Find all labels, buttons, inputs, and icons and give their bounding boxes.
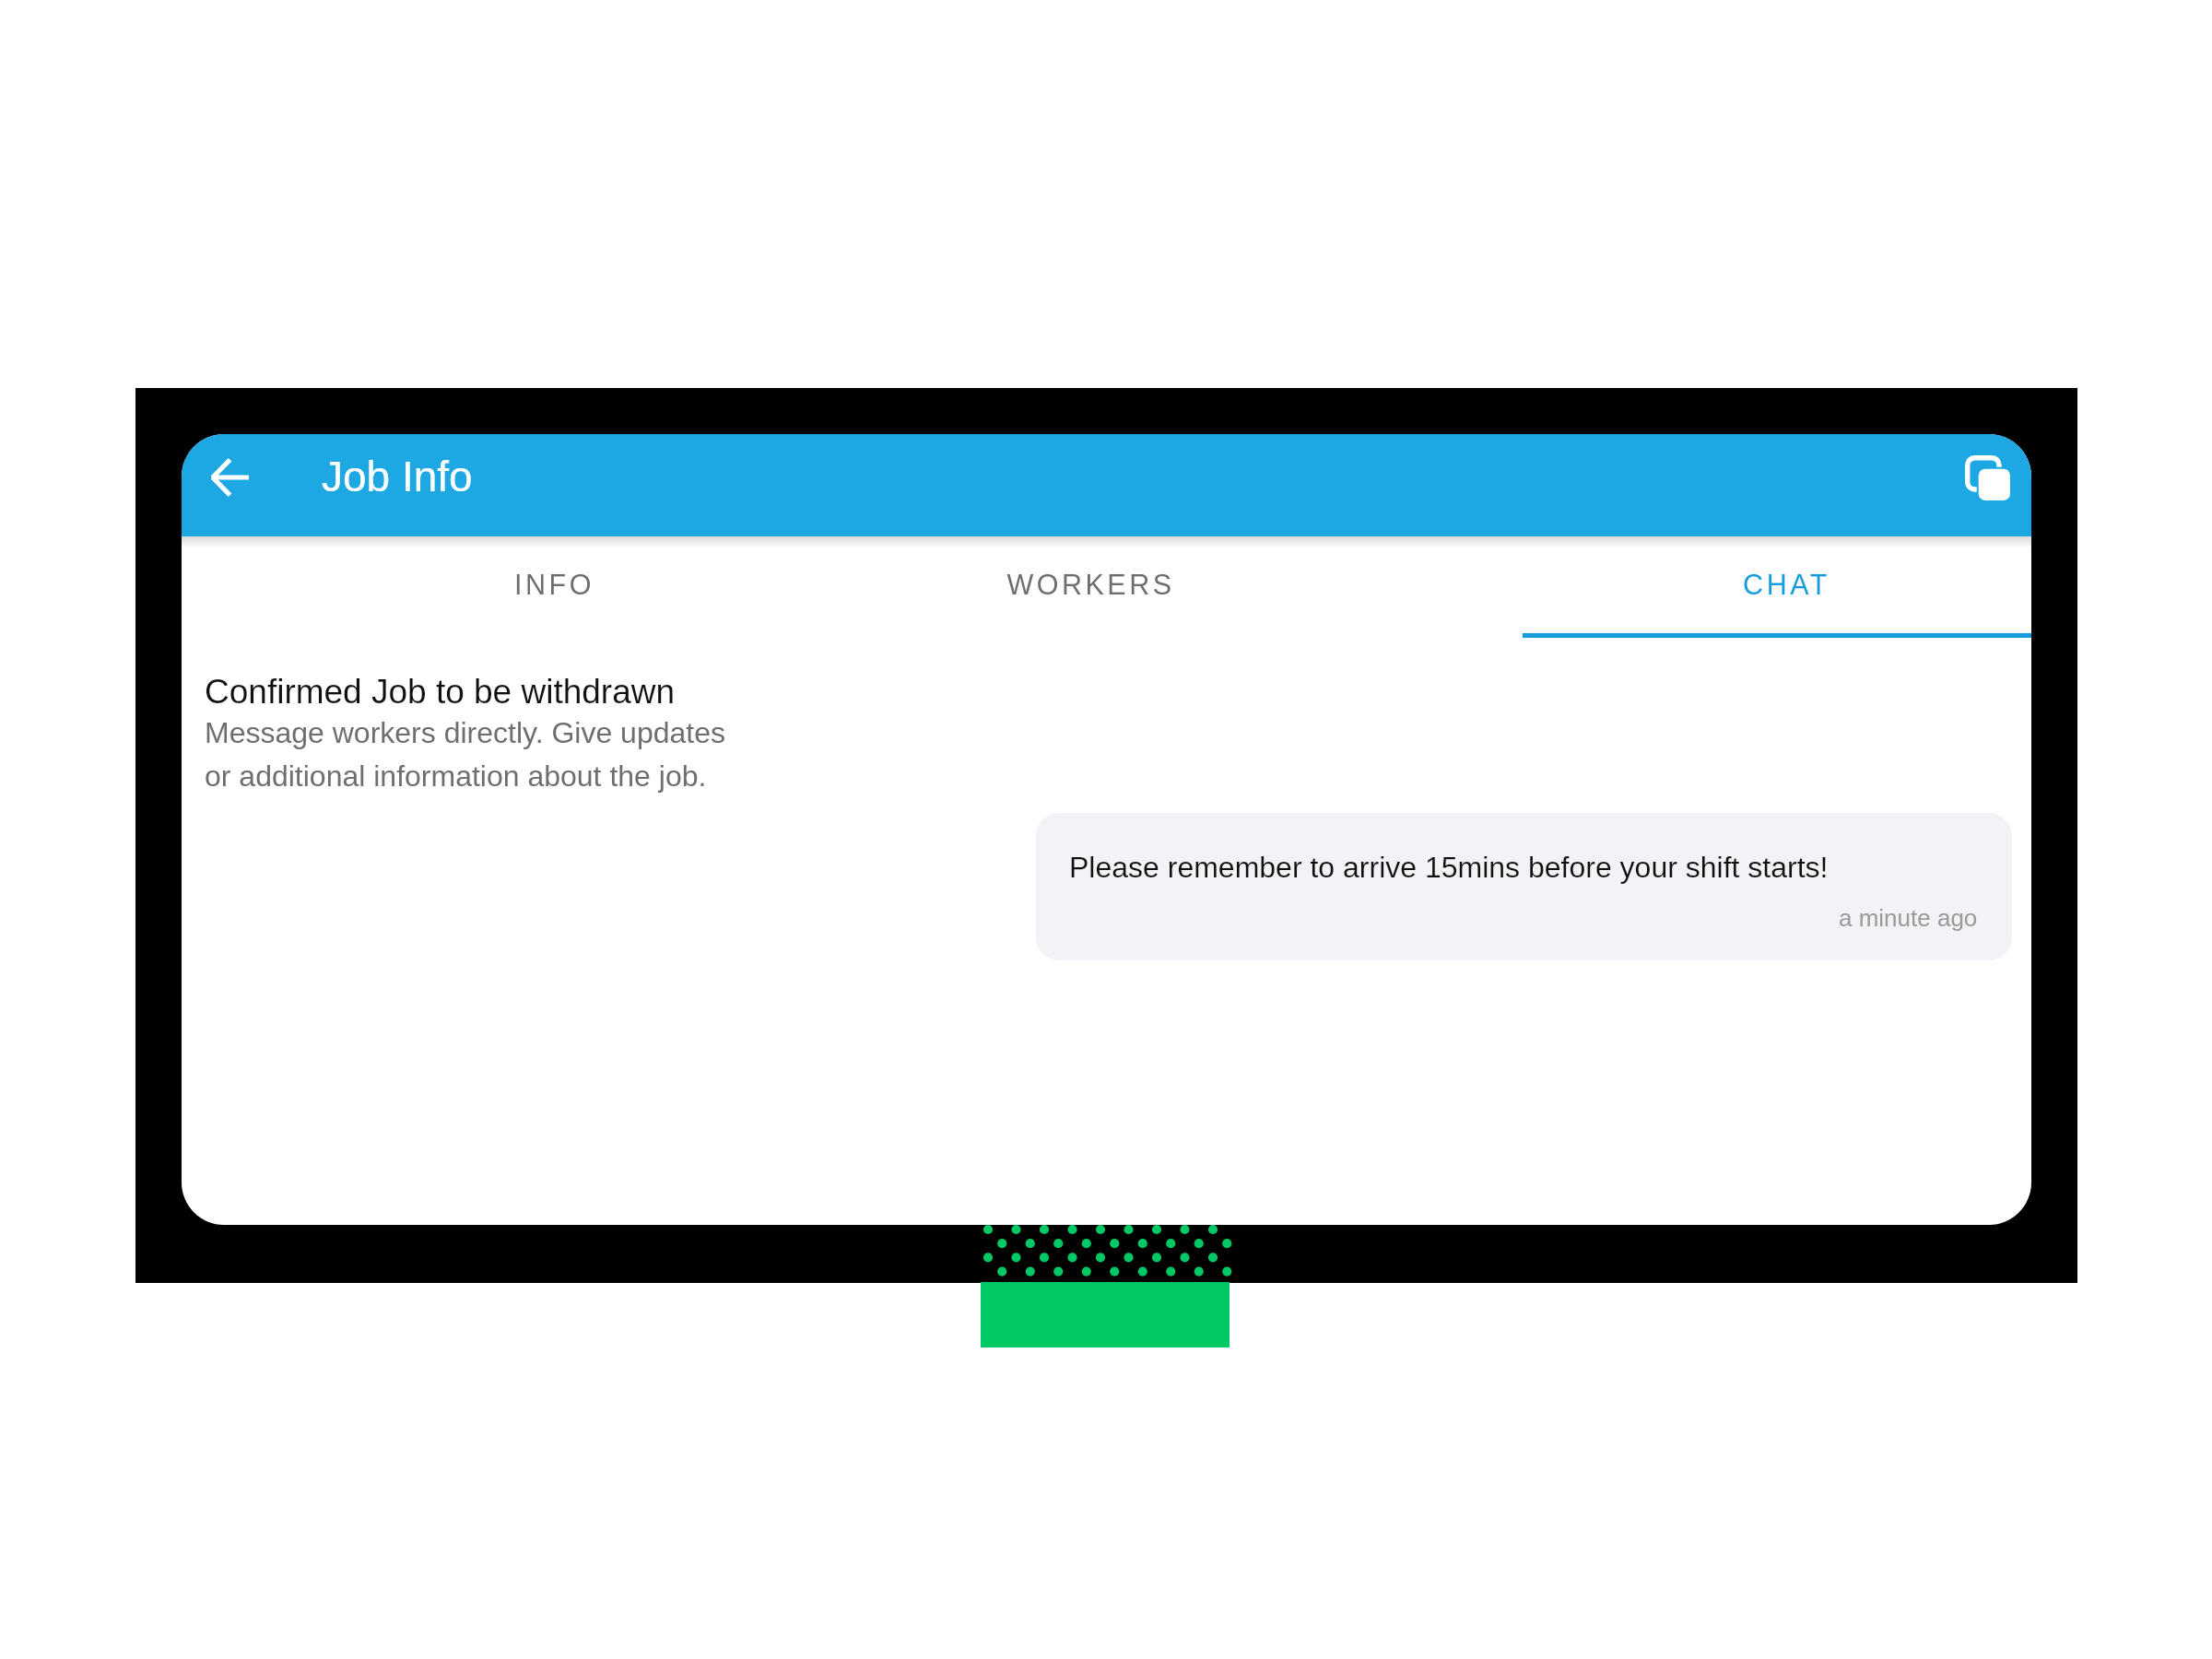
button[interactable]: INFO xyxy=(182,536,924,638)
staticText: a minute ago xyxy=(1839,904,1978,931)
button[interactable]: Back xyxy=(189,437,270,518)
staticText: Message workers directly. Give updates o… xyxy=(205,716,725,792)
staticText: Confirmed Job to be withdrawn xyxy=(205,673,676,711)
staticText: WORKERS xyxy=(1006,569,1175,600)
button[interactable]: WORKERS xyxy=(924,536,1251,638)
staticText: Job Info xyxy=(322,453,473,500)
button[interactable]: CHAT xyxy=(1251,536,2031,638)
button[interactable]: Please remember to arrive 15mins before … xyxy=(1036,813,2012,960)
staticText: CHAT xyxy=(1743,569,1830,600)
staticText: Please remember to arrive 15mins before … xyxy=(1069,851,1829,884)
staticText: INFO xyxy=(514,569,594,600)
button[interactable]: Duplicate xyxy=(1947,437,2028,518)
